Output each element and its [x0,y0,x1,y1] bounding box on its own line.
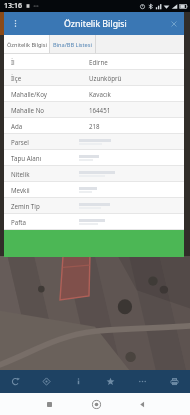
button[interactable]: Tapu Alanı [4,150,184,165]
button[interactable]: Mahalle/Koy [4,86,184,101]
staticText: Mahalle/Koy [11,90,47,98]
button[interactable]: Info [62,370,94,393]
button[interactable]: More options [4,12,26,35]
button[interactable]: Nitelik [4,166,184,181]
button[interactable]: İl [4,54,184,69]
staticText: Öznitelik Bilgisi [64,18,127,30]
button[interactable]: Öznitelik Bilgisi [4,35,49,54]
staticText: Ada [11,122,23,130]
button[interactable]: Parsel [4,134,184,149]
staticText: Mahalle No [11,106,45,114]
staticText: İlçe [11,74,22,82]
staticText: Mevkii [11,186,30,194]
button[interactable]: Mahalle No [4,102,184,117]
button[interactable]: İlçe [4,70,184,85]
button[interactable]: Bina/BB Listesi [50,35,95,54]
staticText: 13:16 [4,1,22,11]
staticText: Parsel [11,138,29,146]
button[interactable]: Print [158,370,190,393]
button[interactable]: Close [164,12,184,35]
staticText: İl [11,58,15,66]
staticText: Edirne [89,58,108,66]
staticText: 164451 [89,106,111,114]
staticText: 218 [89,122,100,130]
staticText: Uzunköprü [89,74,122,82]
staticText: Pafta [11,218,27,226]
button[interactable]: Pafta [4,214,184,229]
button[interactable]: Home [73,393,119,415]
button[interactable]: Layers [31,370,62,393]
staticText: Kavacık [89,90,111,98]
staticText: Öznitelik Bilgisi [7,41,47,49]
button[interactable]: Favorites [94,370,126,393]
button[interactable]: Zemin Tip [4,198,184,213]
button[interactable]: More [126,370,158,393]
staticText: Nitelik [11,170,30,178]
staticText: Zemin Tip [11,202,40,210]
button[interactable]: Refresh [0,370,31,393]
button[interactable]: Back [119,393,165,415]
button[interactable]: Ada [4,118,184,133]
staticText: Bina/BB Listesi [53,41,92,49]
staticText: Tapu Alanı [11,154,42,162]
button[interactable]: Mevkii [4,182,184,197]
button[interactable]: Recents [26,393,73,415]
